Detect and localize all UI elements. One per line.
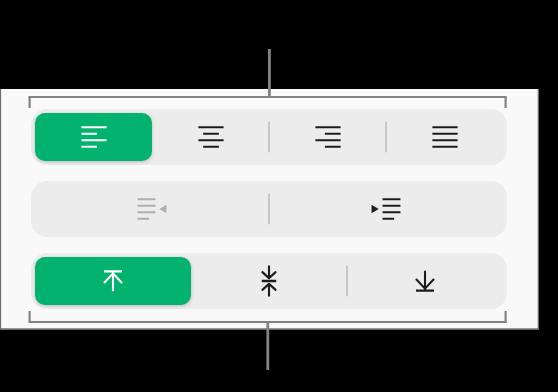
button[interactable]: Align center (152, 113, 269, 161)
button[interactable]: Justify (386, 113, 503, 161)
button[interactable]: Decrease indent (35, 185, 269, 233)
button[interactable]: Align left (35, 113, 152, 161)
button[interactable]: Align top (35, 257, 191, 305)
button[interactable]: Align middle (191, 257, 347, 305)
button[interactable]: Align right (269, 113, 386, 161)
button[interactable]: Increase indent (269, 185, 503, 233)
button[interactable]: Align bottom (347, 257, 503, 305)
